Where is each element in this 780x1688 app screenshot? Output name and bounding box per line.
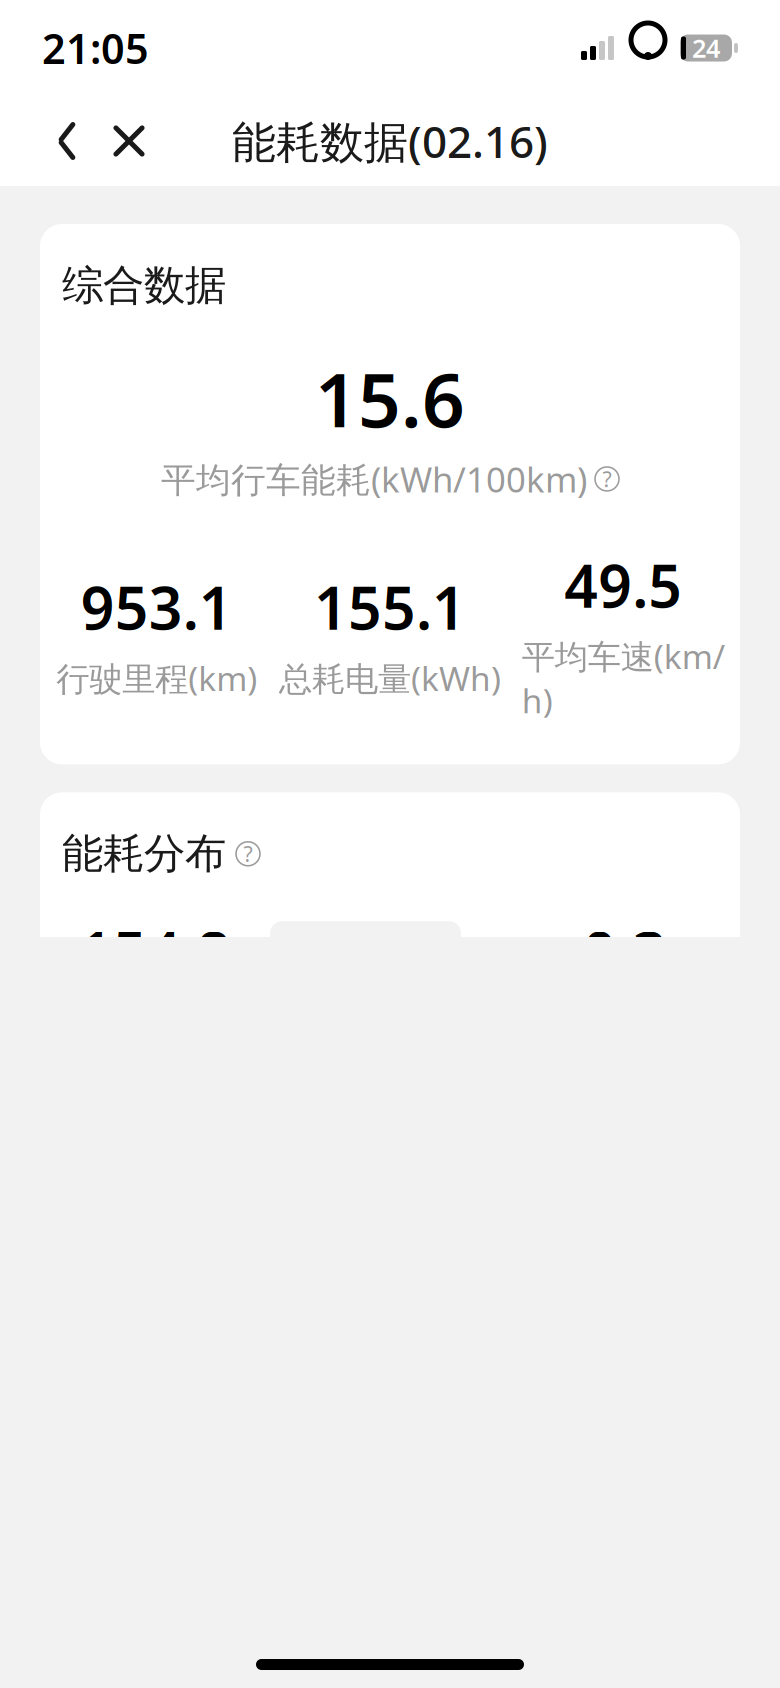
staticText: 平均车速(km/h): [522, 634, 725, 722]
staticText: 24: [692, 31, 720, 65]
staticText: 平均行车能耗(kWh/100km): [161, 456, 587, 502]
staticText: 155.1: [314, 568, 466, 646]
staticText: 能耗数据(02.16): [232, 112, 548, 170]
staticText: ?: [602, 465, 611, 493]
staticText: ?: [243, 840, 252, 868]
staticText: 49.5: [564, 546, 682, 624]
staticText: 行驶里程(km): [56, 656, 257, 700]
button[interactable]: 返回: [36, 106, 98, 176]
staticText: 综合数据: [62, 260, 226, 311]
staticText: 总耗电量(kWh): [279, 656, 501, 700]
staticText: 21:05: [42, 21, 149, 75]
button[interactable]: 关闭: [98, 106, 160, 176]
staticText: 0.3: [583, 913, 667, 991]
staticText: 953.1: [81, 568, 233, 646]
staticText: 能耗分布: [62, 828, 226, 879]
staticText: 15.6: [315, 349, 465, 448]
staticText: 154.8: [79, 913, 231, 991]
